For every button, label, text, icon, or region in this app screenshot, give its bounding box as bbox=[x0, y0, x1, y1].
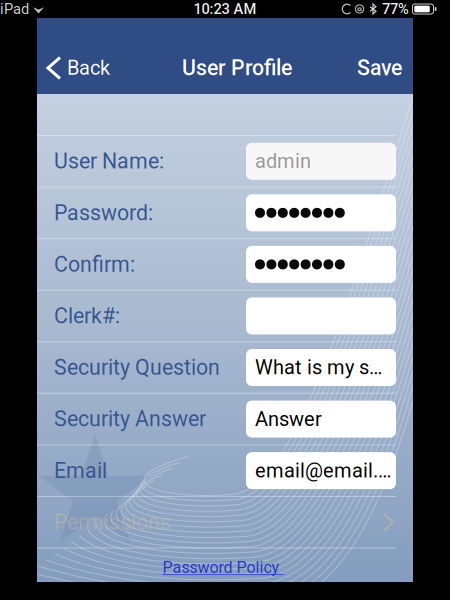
staticText: User Name: bbox=[54, 149, 164, 174]
staticText: Confirm: bbox=[54, 252, 135, 277]
staticText: Email bbox=[54, 458, 107, 483]
button[interactable]: Save bbox=[353, 43, 406, 92]
staticText: User Profile bbox=[182, 55, 292, 80]
staticText: email@email.… bbox=[255, 459, 391, 482]
staticText: Password Policy bbox=[162, 558, 283, 577]
staticText: What is my s… bbox=[255, 356, 382, 379]
staticText: Security Answer bbox=[54, 407, 206, 432]
button[interactable]: Password Policy bbox=[162, 558, 283, 577]
staticText: Clerk#: bbox=[54, 303, 120, 328]
staticText: admin bbox=[255, 150, 311, 173]
staticText: 77% bbox=[382, 0, 409, 18]
button[interactable]: Permissions bbox=[37, 497, 413, 547]
staticText: Security Question bbox=[54, 355, 220, 380]
staticText: Permissions bbox=[54, 510, 171, 535]
staticText: Password: bbox=[54, 200, 153, 225]
staticText: Answer bbox=[255, 407, 322, 431]
staticText: iPad bbox=[0, 0, 29, 18]
staticText: Save bbox=[357, 55, 402, 80]
staticText: Back bbox=[67, 56, 110, 80]
button[interactable]: Back bbox=[45, 44, 113, 92]
staticText: 10:23 AM bbox=[193, 0, 256, 18]
